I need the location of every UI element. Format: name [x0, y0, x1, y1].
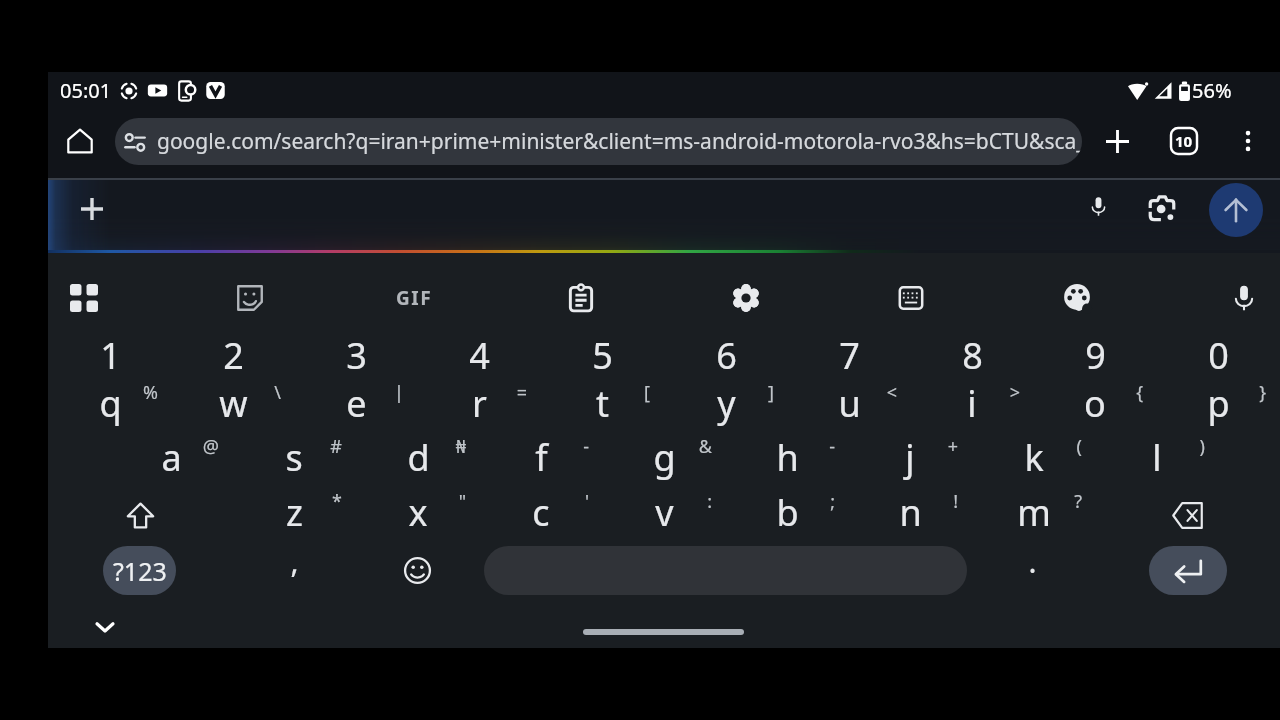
button[interactable]: 8 — [938, 331, 1006, 380]
button[interactable]: z — [260, 488, 328, 537]
staticText: < — [886, 380, 897, 405]
button[interactable]: . — [998, 541, 1066, 590]
button[interactable]: Keyboard layout — [889, 276, 933, 320]
staticText: . — [1028, 541, 1037, 582]
button[interactable]: 3 — [322, 331, 390, 380]
staticText: v — [655, 488, 674, 537]
staticText: p — [1207, 379, 1230, 428]
button[interactable]: google.com/search?q=iran+prime+minister&… — [115, 118, 1082, 165]
button[interactable]: More options — [1222, 115, 1274, 167]
button[interactable]: x — [384, 488, 452, 537]
button[interactable]: k — [1000, 433, 1068, 482]
staticText: q — [99, 379, 122, 428]
staticText: " — [458, 489, 466, 514]
button[interactable]: j — [876, 433, 944, 482]
button[interactable]: , — [260, 541, 328, 590]
button[interactable]: a — [137, 433, 205, 482]
button[interactable]: g — [630, 433, 698, 482]
staticText: 56% — [1192, 77, 1232, 104]
button[interactable]: Add — [66, 183, 118, 235]
staticText: & — [698, 434, 712, 459]
staticText: 1 — [100, 331, 121, 380]
button[interactable]: Tabs — [1158, 115, 1210, 167]
staticText: f — [535, 433, 548, 482]
staticText: ) — [1199, 434, 1205, 459]
button[interactable]: 4 — [445, 331, 513, 380]
button[interactable]: e — [322, 379, 390, 428]
staticText: : — [707, 489, 712, 514]
staticText: c — [532, 488, 550, 537]
button[interactable]: Voice input — [1222, 276, 1266, 320]
button[interactable]: c — [507, 488, 575, 537]
button[interactable]: Search — [1209, 183, 1263, 237]
staticText: 9 — [1085, 331, 1106, 380]
staticText: ₦ — [455, 434, 466, 459]
button[interactable]: o — [1061, 379, 1129, 428]
button[interactable]: Hide keyboard — [88, 610, 122, 644]
button[interactable]: n — [876, 488, 944, 537]
button[interactable]: q — [76, 379, 144, 428]
button[interactable]: Settings — [724, 276, 768, 320]
button[interactable]: Apps — [62, 276, 106, 320]
staticText: 3 — [346, 331, 367, 380]
staticText: j — [905, 433, 915, 482]
button[interactable]: Stickers — [228, 276, 272, 320]
button[interactable]: r — [445, 379, 513, 428]
button[interactable]: i — [938, 379, 1006, 428]
button[interactable]: t — [568, 379, 636, 428]
staticText: # — [330, 434, 342, 459]
button[interactable]: GIF — [392, 276, 436, 320]
staticText: ? — [1074, 489, 1082, 514]
button[interactable]: Shift — [112, 487, 168, 543]
button[interactable]: s — [260, 433, 328, 482]
button[interactable]: Emoji — [389, 542, 445, 598]
staticText: k — [1024, 433, 1044, 482]
staticText: - — [583, 434, 589, 459]
button[interactable]: ?123 — [103, 546, 176, 595]
button[interactable]: Google Lens — [1136, 183, 1188, 235]
staticText: s — [285, 433, 303, 482]
staticText: { — [1136, 380, 1143, 405]
button[interactable]: Backspace — [1159, 487, 1215, 543]
staticText: 7 — [839, 331, 860, 380]
button[interactable]: f — [507, 433, 575, 482]
staticText: ] — [768, 380, 774, 405]
staticText: @ — [202, 434, 219, 459]
button[interactable]: v — [630, 488, 698, 537]
button[interactable]: Voice search — [1072, 183, 1124, 235]
staticText: 6 — [716, 331, 737, 380]
button[interactable]: Space — [484, 546, 967, 595]
staticText: % — [143, 380, 158, 405]
button[interactable]: u — [815, 379, 883, 428]
staticText: = — [516, 380, 527, 405]
button[interactable]: 2 — [199, 331, 267, 380]
button[interactable]: b — [753, 488, 821, 537]
button[interactable]: y — [692, 379, 760, 428]
staticText: ?123 — [113, 554, 167, 588]
button[interactable]: Clipboard — [559, 276, 603, 320]
button[interactable]: p — [1184, 379, 1252, 428]
button[interactable]: 9 — [1061, 331, 1129, 380]
button[interactable]: Themes — [1055, 276, 1099, 320]
button[interactable]: 7 — [815, 331, 883, 380]
button[interactable]: d — [384, 433, 452, 482]
staticText: \ — [274, 380, 281, 405]
button[interactable]: w — [199, 379, 267, 428]
staticText: google.com/search?q=iran+prime+minister&… — [157, 127, 1082, 156]
button[interactable]: m — [1000, 488, 1068, 537]
staticText: l — [1152, 433, 1162, 482]
staticText: > — [1009, 380, 1020, 405]
button[interactable]: 6 — [692, 331, 760, 380]
button[interactable]: l — [1123, 433, 1191, 482]
button[interactable]: h — [753, 433, 821, 482]
staticText: t — [596, 379, 609, 428]
staticText: u — [838, 379, 861, 428]
button[interactable]: New tab — [1091, 115, 1143, 167]
button[interactable]: Enter — [1149, 546, 1227, 595]
button[interactable]: 1 — [76, 331, 144, 380]
staticText: x — [408, 488, 428, 537]
staticText: 05:01 — [60, 77, 112, 104]
button[interactable]: 0 — [1184, 331, 1252, 380]
button[interactable]: 5 — [568, 331, 636, 380]
button[interactable]: Home — [54, 115, 106, 167]
